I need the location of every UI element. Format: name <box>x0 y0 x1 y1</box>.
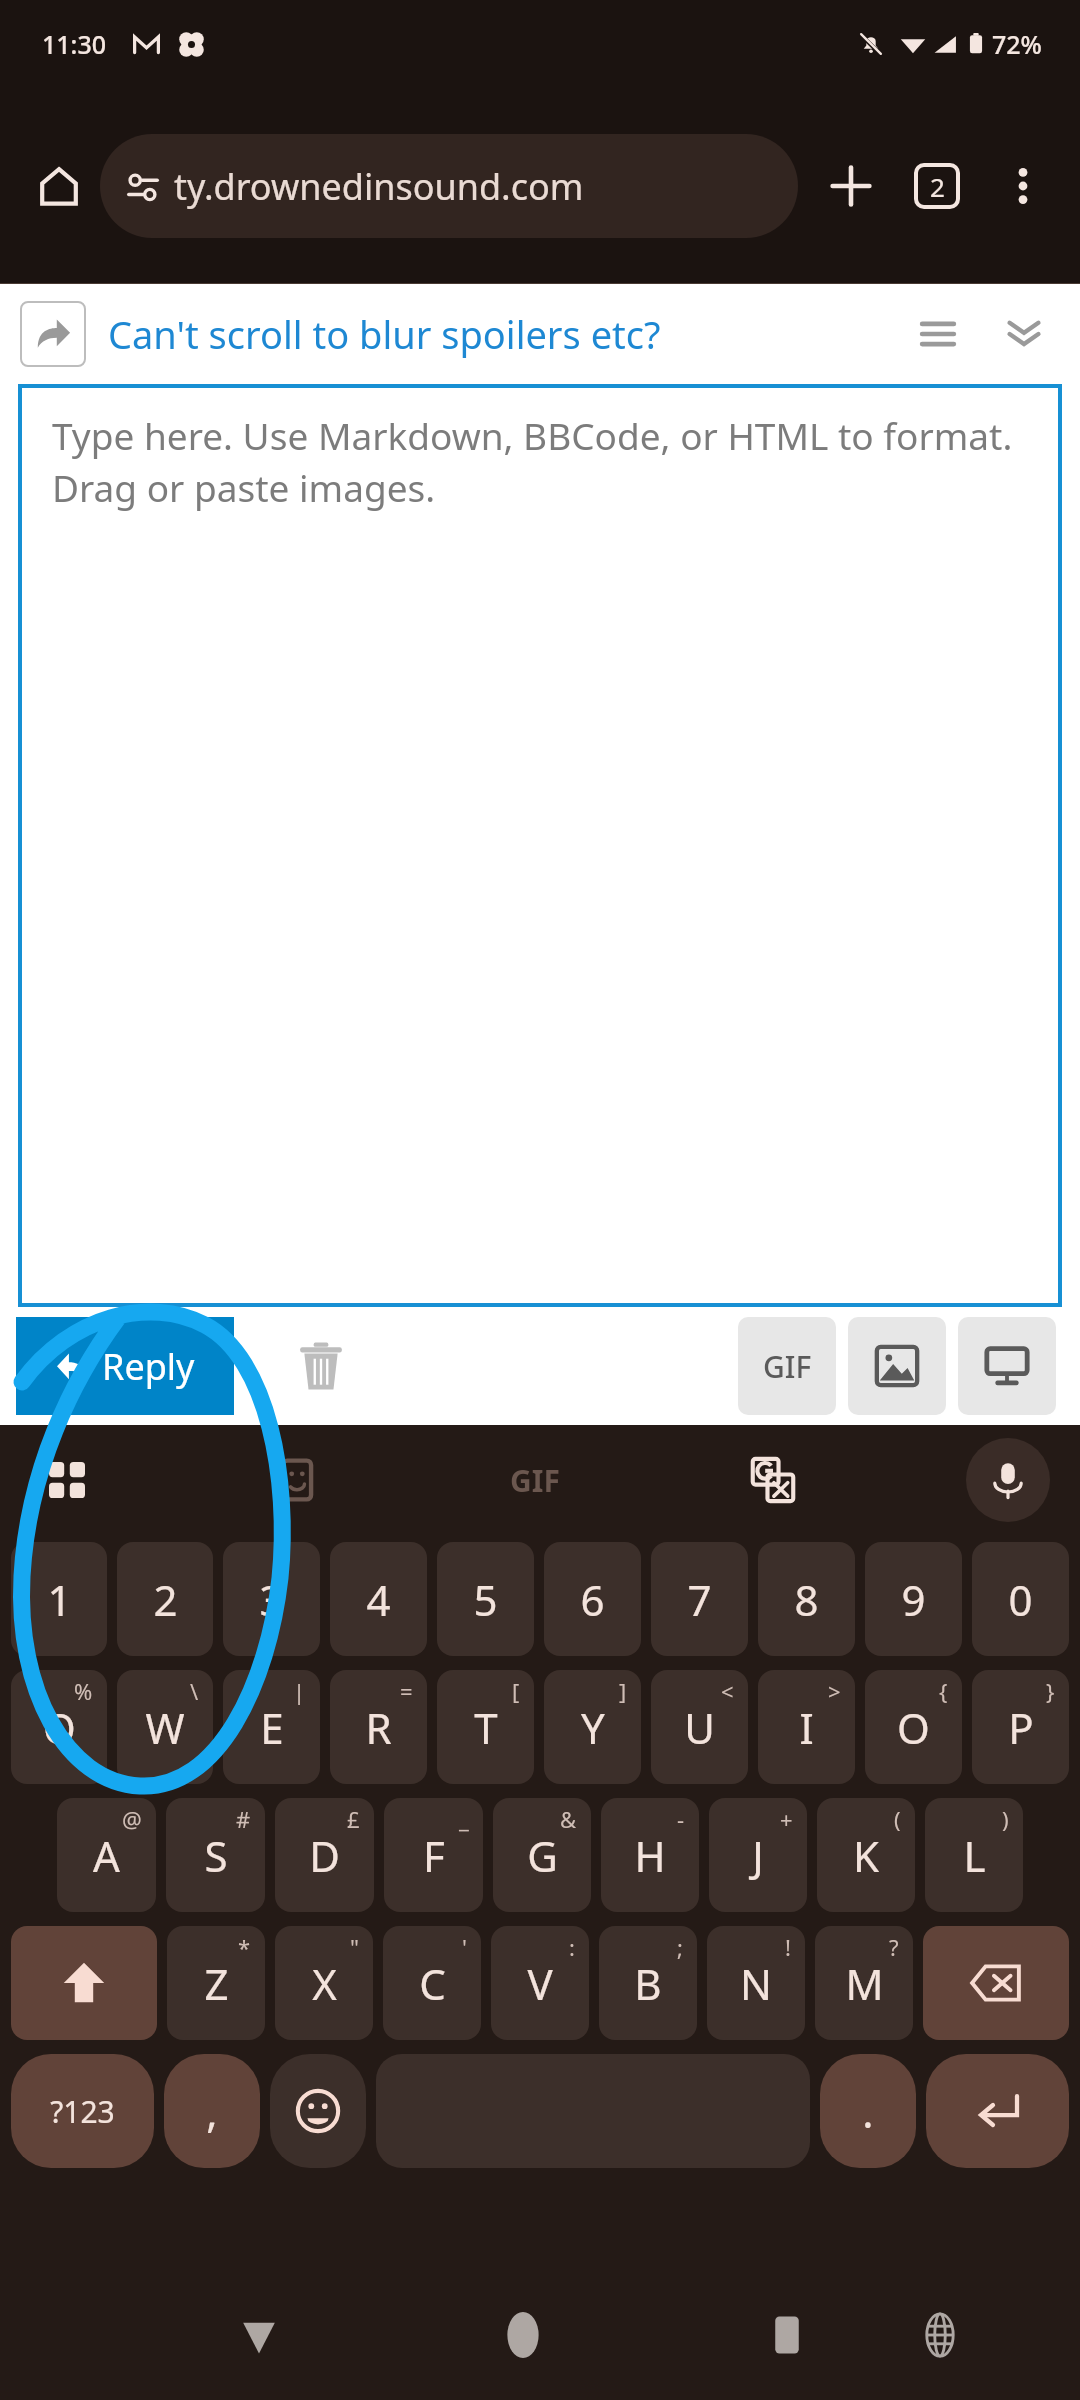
button[interactable]: Voice input <box>966 1438 1050 1522</box>
button[interactable]: K <box>817 1798 915 1912</box>
staticText: ) <box>1002 1804 1009 1834</box>
button[interactable]: 6 <box>544 1542 641 1656</box>
button[interactable]: More options <box>980 143 1066 229</box>
button[interactable]: N <box>707 1926 805 2040</box>
button[interactable]: H <box>601 1798 699 1912</box>
staticText: . <box>862 2083 874 2140</box>
button[interactable]: 0 <box>972 1542 1069 1656</box>
staticText: A <box>93 1827 120 1884</box>
staticText: ( <box>894 1804 901 1834</box>
button[interactable]: Q <box>11 1670 107 1784</box>
button[interactable]: 4 <box>330 1542 427 1656</box>
staticText: @ <box>122 1804 142 1834</box>
button[interactable]: Share <box>20 301 86 367</box>
staticText: 0 <box>1008 1571 1033 1628</box>
staticText: 8 <box>794 1571 819 1628</box>
button[interactable]: 1 <box>11 1542 107 1656</box>
button[interactable]: ?123 <box>11 2054 154 2168</box>
staticText: 7 <box>687 1571 712 1628</box>
button[interactable]: 7 <box>651 1542 748 1656</box>
staticText: 3 <box>259 1571 284 1628</box>
button[interactable]: P <box>972 1670 1069 1784</box>
staticText: - <box>677 1804 685 1834</box>
staticText: S <box>204 1827 228 1884</box>
button[interactable]: Delete draft <box>278 1323 364 1409</box>
button[interactable]: New tab <box>808 143 894 229</box>
button[interactable]: Jump to bottom <box>988 298 1060 370</box>
staticText: # <box>236 1804 251 1834</box>
button[interactable]: I <box>758 1670 855 1784</box>
button[interactable]: W <box>117 1670 213 1784</box>
staticText: ' <box>462 1932 467 1962</box>
button[interactable]: Tabs <box>894 143 980 229</box>
staticText: = <box>400 1676 413 1706</box>
button[interactable]: U <box>651 1670 748 1784</box>
staticText: { <box>939 1676 948 1706</box>
button[interactable]: L <box>925 1798 1023 1912</box>
button[interactable]: M <box>815 1926 913 2040</box>
button[interactable]: F <box>384 1798 483 1912</box>
button[interactable]: Desktop site <box>958 1317 1056 1415</box>
staticText: < <box>721 1676 734 1706</box>
button[interactable]: S <box>166 1798 265 1912</box>
staticText: W <box>145 1699 185 1756</box>
button[interactable]: J <box>709 1798 807 1912</box>
button[interactable]: 9 <box>865 1542 962 1656</box>
button[interactable]: 8 <box>758 1542 855 1656</box>
staticText: 11:30 <box>42 27 107 61</box>
button[interactable]: 2 <box>117 1542 213 1656</box>
staticText: 5 <box>473 1571 498 1628</box>
button[interactable]: , <box>164 2054 260 2168</box>
button[interactable]: Insert image <box>848 1317 946 1415</box>
staticText: & <box>560 1804 577 1834</box>
staticText: 9 <box>901 1571 926 1628</box>
button[interactable]: Type here. Use Markdown, BBCode, or HTML… <box>18 384 1062 1307</box>
staticText: Y <box>581 1699 605 1756</box>
button[interactable]: Toolbox <box>30 1443 104 1517</box>
button[interactable]: Stickers <box>260 1443 334 1517</box>
button[interactable]: Backspace <box>923 1926 1069 2040</box>
button[interactable]: V <box>491 1926 589 2040</box>
button[interactable]: Enter <box>926 2054 1069 2168</box>
button[interactable]: . <box>820 2054 916 2168</box>
button[interactable]: Menu <box>902 298 974 370</box>
button[interactable]: Translate <box>736 1443 810 1517</box>
staticText: R <box>365 1699 392 1756</box>
button[interactable]: ty.drownedinsound.com <box>100 134 798 238</box>
staticText: ty.drownedinsound.com <box>174 162 584 211</box>
button[interactable]: E <box>223 1670 320 1784</box>
button[interactable]: Home <box>22 149 96 223</box>
button[interactable]: D <box>275 1798 374 1912</box>
button[interactable]: B <box>599 1926 697 2040</box>
staticText: ?123 <box>50 2091 115 2132</box>
button[interactable]: Can't scroll to blur spoilers etc? <box>108 308 902 360</box>
button[interactable]: X <box>275 1926 373 2040</box>
button[interactable]: Change keyboard <box>892 2287 988 2383</box>
staticText: [ <box>512 1676 520 1706</box>
staticText: 6 <box>580 1571 605 1628</box>
button[interactable]: C <box>383 1926 481 2040</box>
button[interactable]: Y <box>544 1670 641 1784</box>
button[interactable]: GIF keyboard <box>490 1435 580 1525</box>
button[interactable]: GIF <box>738 1317 836 1415</box>
button[interactable]: Back <box>211 2287 307 2383</box>
button[interactable]: A <box>57 1798 156 1912</box>
button[interactable]: O <box>865 1670 962 1784</box>
staticText: ] <box>619 1676 627 1706</box>
button[interactable]: G <box>493 1798 591 1912</box>
button[interactable]: Shift <box>11 1926 157 2040</box>
button[interactable]: Z <box>167 1926 265 2040</box>
button[interactable]: Reply <box>16 1317 234 1415</box>
button[interactable]: 3 <box>223 1542 320 1656</box>
button[interactable]: Recents <box>739 2287 835 2383</box>
staticText: I <box>799 1699 814 1756</box>
button[interactable]: Emoji <box>270 2054 366 2168</box>
button[interactable]: Home <box>475 2287 571 2383</box>
staticText: X <box>312 1955 337 2012</box>
button[interactable]: T <box>437 1670 534 1784</box>
button[interactable]: R <box>330 1670 427 1784</box>
button[interactable]: 5 <box>437 1542 534 1656</box>
staticText: B <box>634 1955 662 2012</box>
staticText: 2 <box>930 169 945 204</box>
